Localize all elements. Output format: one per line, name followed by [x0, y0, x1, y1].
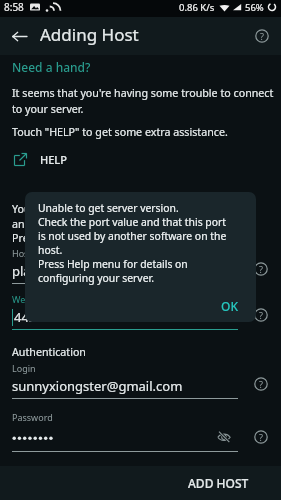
staticText: ?: [259, 309, 263, 321]
staticText: ?: [259, 431, 263, 443]
staticText: Authentication: [12, 345, 86, 360]
button[interactable]: Field help: [245, 421, 277, 453]
staticText: OK: [221, 298, 238, 314]
button[interactable]: OK: [216, 294, 243, 318]
staticText: Password: [12, 411, 53, 423]
button[interactable]: Field help: [245, 368, 277, 400]
staticText: Unable to get server version. Check the …: [38, 201, 227, 285]
staticText: 443: [14, 308, 37, 326]
staticText: It seems that you're having some trouble…: [12, 86, 274, 116]
button[interactable]: Toggle password visibility: [213, 426, 235, 448]
staticText: ?: [260, 30, 264, 42]
staticText: Login: [12, 362, 36, 374]
staticText: sunnyxiongster@gmail.com: [12, 377, 183, 395]
button[interactable]: Field help: [245, 299, 277, 331]
button[interactable]: Help: [243, 17, 281, 55]
staticText: 56%: [245, 1, 264, 14]
button[interactable]: Back: [0, 17, 38, 55]
staticText: Touch "HELP" to get some extra assistanc…: [12, 125, 228, 140]
staticText: HELP: [40, 152, 67, 167]
staticText: ?: [259, 263, 263, 275]
button[interactable]: Field help: [245, 253, 277, 285]
staticText: Host: [12, 247, 32, 259]
staticText: ADD HOST: [188, 475, 249, 491]
staticText: playscreen.ddns.net: [12, 262, 135, 280]
button[interactable]: HELP: [0, 146, 281, 172]
staticText: 8:58: [4, 0, 24, 14]
staticText: Adding Host: [40, 23, 139, 46]
staticText: 0.86 K/s: [179, 1, 215, 14]
staticText: Need a hand?: [12, 59, 91, 75]
staticText: Your server must be running and an inter…: [12, 202, 178, 246]
button[interactable]: ADD HOST: [155, 466, 281, 500]
staticText: ?: [259, 378, 263, 390]
staticText: WebSocket Port: [12, 293, 79, 305]
